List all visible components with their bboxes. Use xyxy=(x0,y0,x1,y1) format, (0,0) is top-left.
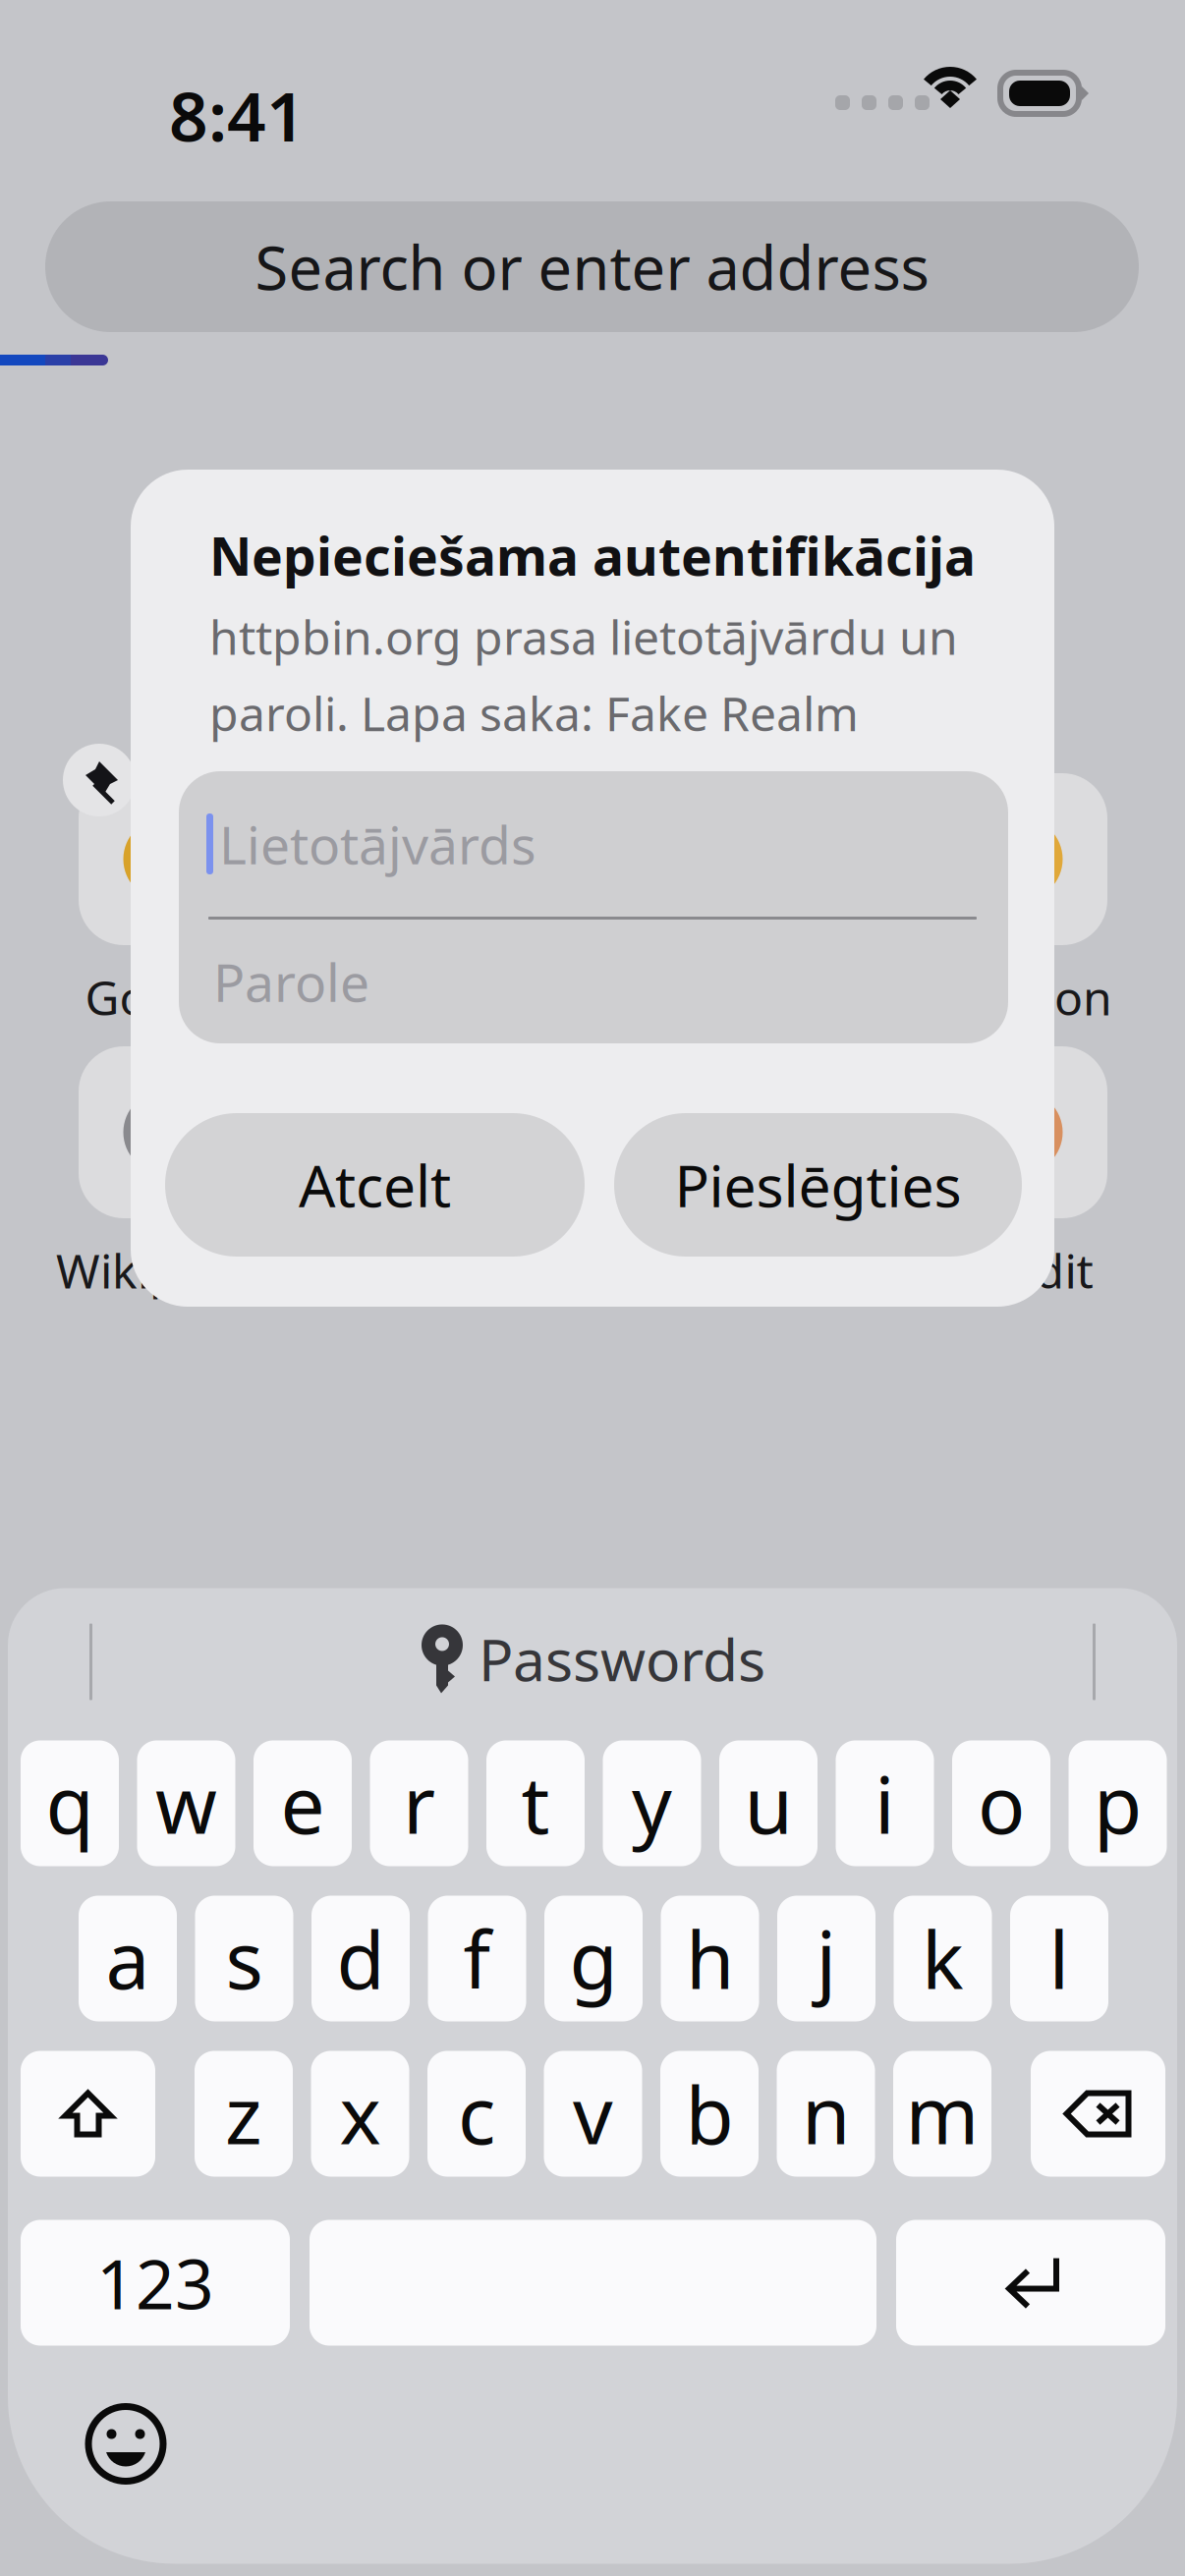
staticText: t xyxy=(521,1751,550,1855)
staticText: o xyxy=(978,1751,1025,1855)
button[interactable]: Space xyxy=(310,2220,876,2346)
button[interactable]: d xyxy=(311,1896,410,2021)
button[interactable]: h xyxy=(661,1896,759,2021)
button[interactable]: t xyxy=(486,1740,585,1866)
staticText: b xyxy=(685,2062,734,2166)
button[interactable]: Shift xyxy=(21,2051,155,2177)
staticText: Nepieciešama autentifikācija xyxy=(209,521,976,590)
button[interactable]: Amazon xyxy=(935,773,1107,1019)
staticText: paroli. Lapa saka: Fake Realm xyxy=(209,682,859,744)
button[interactable]: Search or enter address xyxy=(45,201,1139,332)
staticText: f xyxy=(463,1906,491,2011)
staticText: w xyxy=(155,1751,217,1855)
button[interactable]: Passwords xyxy=(422,1621,765,1697)
staticText: c xyxy=(458,2062,495,2166)
button[interactable]: Facebook xyxy=(365,773,536,1019)
staticText: e xyxy=(281,1751,325,1855)
button[interactable]: Parole xyxy=(179,920,1008,1043)
button[interactable]: f xyxy=(428,1896,526,2021)
staticText: y xyxy=(632,1751,672,1855)
button[interactable]: v xyxy=(544,2051,642,2177)
button[interactable]: c xyxy=(427,2051,526,2177)
staticText: j xyxy=(816,1906,837,2011)
button[interactable]: n xyxy=(777,2051,875,2177)
staticText: i xyxy=(875,1751,895,1855)
button[interactable]: Twitter xyxy=(365,1046,536,1292)
button[interactable]: q xyxy=(21,1740,119,1866)
staticText: 8:41 xyxy=(169,70,306,160)
staticText: Parole xyxy=(213,947,369,1016)
button[interactable]: x xyxy=(311,2051,409,2177)
button[interactable]: 123 xyxy=(21,2220,290,2346)
staticText: n xyxy=(802,2062,850,2166)
button[interactable]: z xyxy=(195,2051,293,2177)
button[interactable]: Google xyxy=(79,773,251,1019)
button[interactable]: u xyxy=(719,1740,818,1866)
button[interactable]: Wikipedia xyxy=(79,1046,251,1292)
staticText: z xyxy=(225,2062,262,2166)
staticText: r xyxy=(403,1751,435,1855)
button[interactable]: Pieslēgties xyxy=(614,1113,1022,1257)
button[interactable]: g xyxy=(544,1896,643,2021)
staticText: Reddit xyxy=(950,1239,1093,1301)
button[interactable]: e xyxy=(254,1740,352,1866)
button[interactable]: y xyxy=(603,1740,701,1866)
staticText: Atcelt xyxy=(299,1147,451,1223)
staticText: Google xyxy=(85,966,244,1028)
staticText: Amazon xyxy=(931,966,1112,1028)
button[interactable]: p xyxy=(1069,1740,1167,1866)
staticText: k xyxy=(922,1906,964,2011)
staticText: Pieslēgties xyxy=(675,1147,961,1223)
button[interactable]: Return xyxy=(896,2220,1165,2346)
staticText: v xyxy=(573,2062,613,2166)
staticText: d xyxy=(337,1906,385,2011)
staticText: q xyxy=(46,1751,94,1855)
staticText: Search or enter address xyxy=(255,227,929,307)
staticText: g xyxy=(569,1906,618,2011)
button[interactable]: Atcelt xyxy=(165,1113,585,1257)
button[interactable]: Lietotājvārds xyxy=(179,771,1008,917)
button[interactable]: o xyxy=(952,1740,1050,1866)
button[interactable]: Delete xyxy=(1031,2051,1165,2177)
staticText: l xyxy=(1049,1906,1070,2011)
button[interactable]: m xyxy=(893,2051,991,2177)
button[interactable]: j xyxy=(777,1896,875,2021)
button[interactable]: r xyxy=(370,1740,468,1866)
button[interactable]: k xyxy=(894,1896,992,2021)
staticText: s xyxy=(226,1906,263,2011)
staticText: Passwords xyxy=(479,1621,765,1697)
staticText: m xyxy=(905,2062,979,2166)
button[interactable]: a xyxy=(79,1896,177,2021)
staticText: Wikipedia xyxy=(56,1239,273,1301)
button[interactable]: YouTube xyxy=(649,773,821,1019)
button[interactable]: w xyxy=(137,1740,235,1866)
staticText: httpbin.org prasa lietotājvārdu un xyxy=(209,605,958,668)
staticText: h xyxy=(686,1906,734,2011)
staticText: Twitter xyxy=(373,1239,528,1301)
staticText: Lietotājvārds xyxy=(219,809,536,879)
button[interactable]: b xyxy=(660,2051,759,2177)
button[interactable]: l xyxy=(1010,1896,1108,2021)
button[interactable]: i xyxy=(836,1740,934,1866)
button[interactable]: Reddit xyxy=(935,1046,1107,1292)
staticText: u xyxy=(744,1751,792,1855)
staticText: x xyxy=(339,2062,381,2166)
staticText: Facebook xyxy=(344,966,557,1028)
button[interactable]: Emoji xyxy=(86,2405,165,2483)
staticText: p xyxy=(1094,1751,1142,1855)
button[interactable]: s xyxy=(195,1896,293,2021)
staticText: 123 xyxy=(96,2238,214,2328)
staticText: eBay xyxy=(682,1239,789,1301)
staticText: a xyxy=(106,1906,150,2011)
button[interactable]: eBay xyxy=(649,1046,821,1292)
